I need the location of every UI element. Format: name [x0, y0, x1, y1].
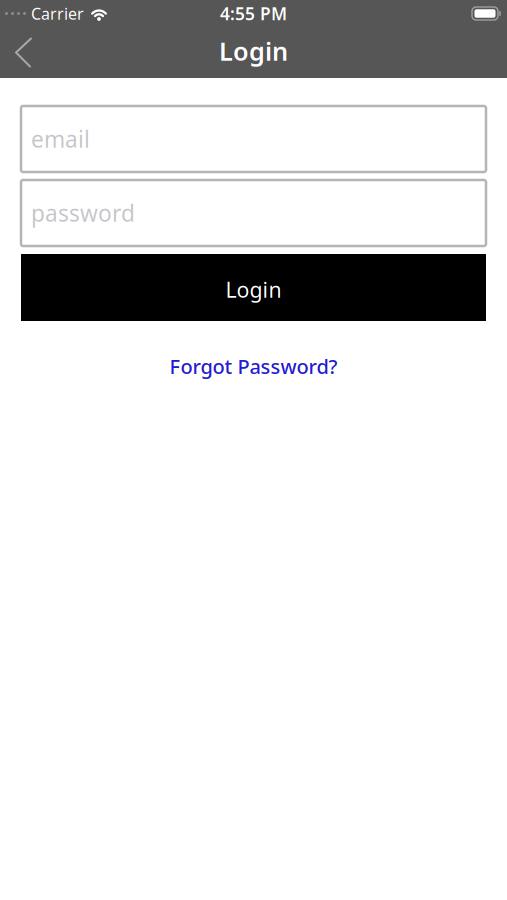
- button[interactable]: Back: [0, 34, 48, 70]
- staticText: Login: [225, 275, 281, 304]
- staticText: Forgot Password?: [169, 353, 337, 380]
- staticText: 4:55 PM: [220, 2, 287, 25]
- button[interactable]: Forgot Password?: [169, 353, 337, 380]
- staticText: Carrier: [31, 3, 84, 24]
- staticText: Login: [219, 34, 288, 68]
- button[interactable]: Login: [21, 254, 486, 321]
- staticText: password: [31, 198, 135, 228]
- staticText: email: [31, 124, 90, 154]
